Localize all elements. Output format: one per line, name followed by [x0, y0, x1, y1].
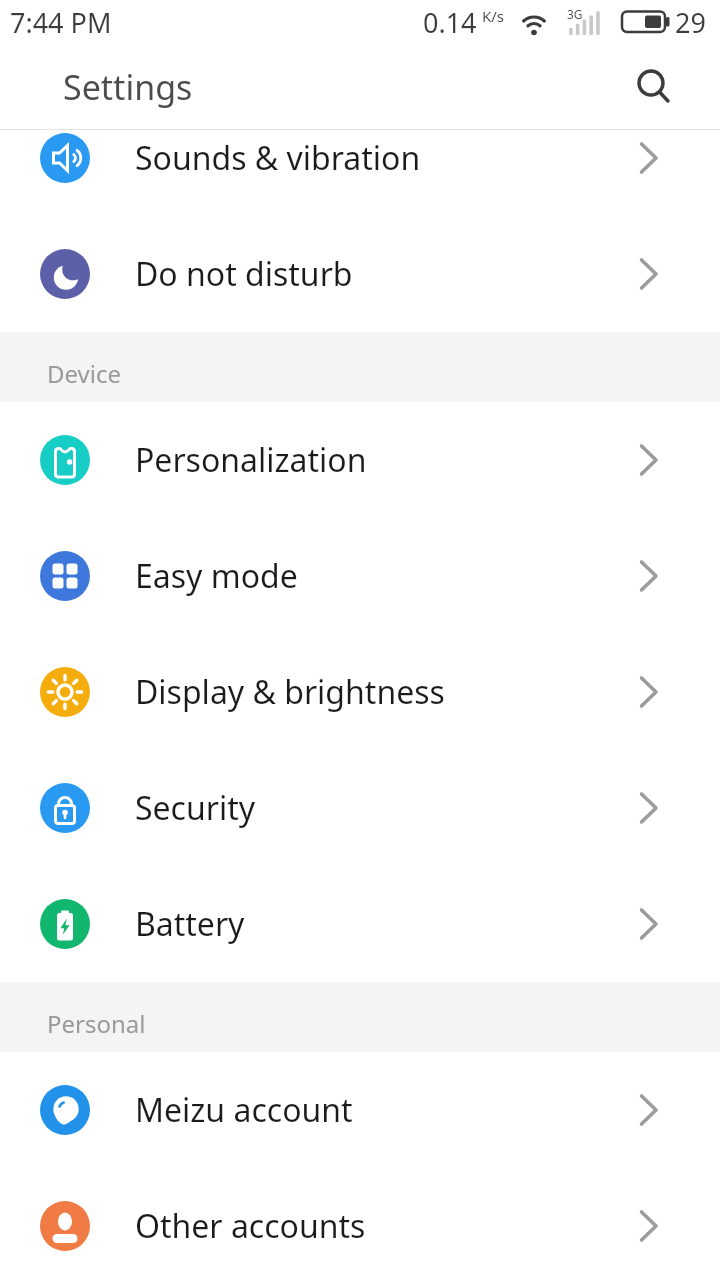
staticText: 0.14: [423, 4, 477, 41]
staticText: Display & brightness: [135, 670, 445, 714]
staticText: 29: [675, 4, 706, 41]
button[interactable]: Other accounts: [0, 1168, 720, 1280]
button[interactable]: Easy mode: [0, 518, 720, 634]
staticText: Settings: [63, 64, 193, 110]
staticText: Security: [135, 786, 256, 830]
button[interactable]: Security: [0, 750, 720, 866]
button[interactable]: Battery: [0, 866, 720, 982]
staticText: Other accounts: [135, 1204, 366, 1248]
staticText: Easy mode: [135, 554, 298, 598]
button[interactable]: Meizu account: [0, 1052, 720, 1168]
staticText: Meizu account: [135, 1088, 353, 1132]
staticText: Sounds & vibration: [135, 136, 421, 180]
staticText: Do not disturb: [135, 252, 353, 296]
staticText: 7:44 PM: [10, 4, 112, 41]
staticText: Battery: [135, 902, 245, 946]
staticText: 3G: [567, 6, 583, 22]
button[interactable]: Personalization: [0, 402, 720, 518]
button[interactable]: Sounds & vibration: [0, 100, 720, 216]
staticText: Personalization: [135, 438, 367, 482]
staticText: Personal: [47, 1007, 146, 1040]
staticText: K/s: [482, 6, 505, 26]
button[interactable]: Do not disturb: [0, 216, 720, 332]
button[interactable]: Display & brightness: [0, 634, 720, 750]
staticText: Device: [47, 357, 122, 390]
